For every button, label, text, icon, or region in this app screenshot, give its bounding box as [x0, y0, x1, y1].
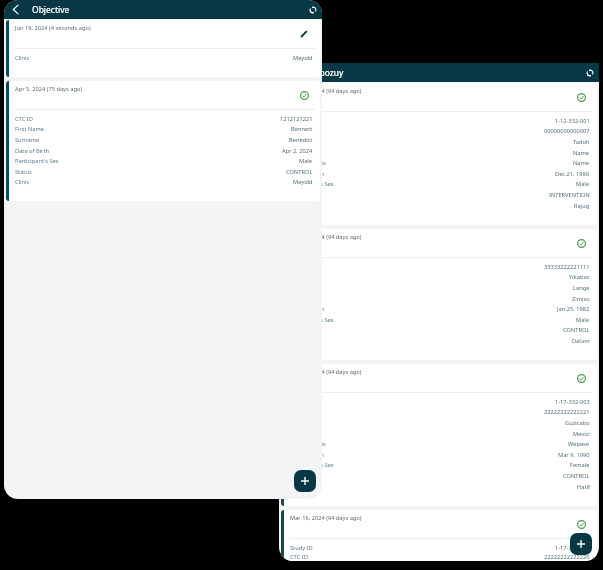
staticText: 22222222222221: [544, 408, 590, 416]
staticText: Date of Birth: [15, 147, 50, 155]
staticText: Male: [576, 316, 590, 324]
staticText: Bennett: [291, 125, 313, 133]
staticText: Study ID: [290, 544, 313, 552]
staticText: Mar 9, 1990: [558, 451, 590, 459]
staticText: Mar 16, 2024 (94 days ago): [290, 233, 362, 241]
staticText: 1-17-332-004: [555, 544, 590, 552]
staticText: Mevici: [573, 430, 590, 438]
staticText: Hatif: [577, 483, 590, 491]
staticText: First Name: [290, 138, 320, 146]
staticText: Objective: [32, 4, 70, 16]
staticText: Clinic: [290, 483, 305, 491]
staticText: 1-12-332-001: [555, 117, 590, 125]
staticText: Mar 16, 2024 (94 days ago): [290, 368, 362, 376]
staticText: Tadoh: [573, 138, 590, 146]
button[interactable]: Refresh: [304, 0, 322, 19]
staticText: Benedict: [289, 136, 313, 144]
staticText: Status: [15, 168, 32, 176]
staticText: Mar 16, 2024 (94 days ago): [290, 87, 362, 95]
staticText: Surname: [290, 149, 315, 157]
button[interactable]: Edit: [296, 26, 312, 42]
staticText: Mabozuy: [307, 67, 344, 79]
staticText: 33333222221111: [544, 263, 590, 271]
staticText: Lange: [573, 284, 590, 292]
staticText: Male: [299, 157, 313, 165]
staticText: Name: [573, 149, 590, 157]
staticText: Guzicabo: [565, 419, 590, 427]
staticText: Participant's Sex: [290, 316, 334, 324]
staticText: Clinic: [15, 54, 30, 62]
staticText: Participant's Sex: [290, 180, 334, 188]
staticText: Date of Birth: [290, 305, 325, 313]
staticText: INTERVENTION: [549, 191, 590, 199]
staticText: Dec 21, 1990: [555, 170, 590, 178]
staticText: Clinic: [15, 178, 30, 186]
staticText: Delum: [572, 337, 590, 345]
staticText: 22222222222220: [544, 553, 590, 561]
staticText: Rajug: [574, 202, 590, 210]
staticText: Zimiso: [572, 295, 590, 303]
button[interactable]: Add: [294, 470, 316, 492]
staticText: Participant's Sex: [290, 461, 334, 469]
staticText: Date of Birth: [290, 451, 325, 459]
staticText: Mar 16, 2024 (94 days ago): [290, 514, 362, 522]
staticText: CTC ID: [290, 127, 308, 135]
button[interactable]: Add: [570, 533, 592, 555]
staticText: Study ID: [290, 117, 313, 125]
button[interactable]: Back: [281, 63, 300, 82]
staticText: CONTROL: [286, 168, 313, 176]
staticText: 1-17-332-003: [555, 398, 590, 406]
staticText: CONTROL: [563, 326, 590, 334]
staticText: Male: [576, 180, 590, 188]
staticText: First Name: [15, 125, 45, 133]
staticText: Meyidd: [293, 54, 313, 62]
staticText: CTC ID: [15, 115, 33, 123]
staticText: Jan 25, 1982: [557, 305, 590, 313]
staticText: Apr 2, 2024: [282, 147, 313, 155]
staticText: Status: [290, 472, 307, 480]
staticText: Apr 5, 2024 (75 days ago): [15, 85, 83, 93]
staticText: Other Names: [290, 159, 326, 167]
staticText: CTC ID: [290, 553, 308, 561]
staticText: Name: [573, 159, 590, 167]
staticText: Surname: [15, 136, 40, 144]
button[interactable]: Back: [6, 0, 25, 19]
staticText: 00000000000007: [544, 127, 590, 135]
staticText: Participant's Sex: [15, 157, 59, 165]
staticText: Date of Birth: [290, 170, 325, 178]
staticText: Female: [570, 461, 590, 469]
staticText: Yikatizo: [569, 273, 590, 281]
staticText: Other Names: [290, 440, 326, 448]
staticText: Wepese: [568, 440, 590, 448]
staticText: 1212121221: [280, 115, 313, 123]
staticText: Jun 19, 2024 (4 seconds ago): [15, 24, 91, 32]
button[interactable]: Refresh: [580, 63, 599, 82]
staticText: CONTROL: [563, 472, 590, 480]
staticText: Meyidd: [293, 178, 313, 186]
